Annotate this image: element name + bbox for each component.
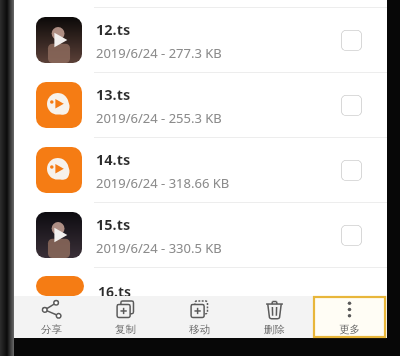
staticText: 15.ts: [96, 214, 131, 234]
staticText: 移动: [189, 323, 210, 336]
button[interactable]: 更多: [314, 297, 385, 337]
button[interactable]: Select 12.ts: [329, 18, 373, 62]
button[interactable]: Select 15.ts: [329, 213, 373, 257]
staticText: 2019/6/24 - 330.5 KB: [96, 239, 222, 257]
button[interactable]: Select 13.ts: [329, 83, 373, 127]
button[interactable]: 删除: [239, 297, 310, 337]
button[interactable]: 移动: [164, 297, 235, 337]
staticText: 复制: [115, 323, 136, 336]
staticText: 2019/6/24 - 255.3 KB: [96, 109, 222, 127]
staticText: 2019/6/24 - 318.66 KB: [96, 174, 230, 192]
button[interactable]: Select 14.ts: [329, 148, 373, 192]
staticText: 删除: [264, 323, 285, 336]
button[interactable]: 分享: [16, 297, 86, 337]
staticText: 12.ts: [96, 19, 131, 39]
staticText: 2019/6/24 - 277.3 KB: [96, 44, 222, 62]
staticText: 13.ts: [96, 84, 131, 104]
button[interactable]: 13.ts: [14, 73, 387, 137]
staticText: 14.ts: [96, 149, 131, 169]
button[interactable]: 16.ts: [14, 268, 387, 296]
button[interactable]: 12.ts: [14, 8, 387, 72]
staticText: 分享: [41, 323, 62, 336]
button[interactable]: 14.ts: [14, 138, 387, 202]
staticText: 16.ts: [98, 282, 132, 296]
button[interactable]: 15.ts: [14, 203, 387, 267]
staticText: 更多: [339, 323, 360, 336]
button[interactable]: 复制: [90, 297, 160, 337]
